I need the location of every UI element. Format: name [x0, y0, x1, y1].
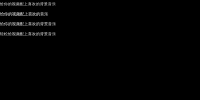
staticText: 给你的视频配上喜欢的音乐 [0, 11, 48, 17]
staticText: 给你的视频配上喜欢的背景音乐 [0, 21, 56, 26]
staticText: 轻松给视频配上喜欢的背景音乐 [0, 32, 56, 36]
staticText: 给你的视频配上喜欢的背景音乐 [0, 2, 56, 6]
